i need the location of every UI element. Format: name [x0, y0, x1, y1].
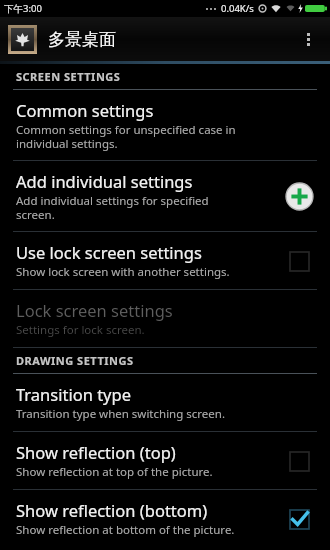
button[interactable]: Add individual settings	[0, 161, 330, 231]
staticText: Show reflection at top of the picture.	[16, 464, 213, 480]
button[interactable]: Show reflection (top)	[0, 432, 330, 489]
button[interactable]: Show reflection (bottom)	[0, 490, 330, 547]
staticText: Show reflection at bottom of the picture…	[16, 522, 235, 538]
button[interactable]: Common settings	[0, 90, 330, 160]
staticText: Show reflection (bottom)	[16, 499, 208, 521]
staticText: Transition type	[16, 383, 131, 405]
staticText: 0.04K/s	[221, 2, 254, 15]
staticText: Use lock screen settings	[16, 241, 202, 263]
staticText: Settings for lock screen.	[16, 322, 145, 338]
staticText: Add individual settings for specified sc…	[16, 193, 209, 222]
staticText: Common settings for unspecified case in …	[16, 122, 236, 151]
button[interactable]: Transition type	[0, 374, 330, 431]
staticText: 多景桌面	[48, 29, 116, 50]
button[interactable]: More options	[291, 22, 325, 56]
staticText: Common settings	[16, 99, 154, 121]
staticText: Transition type when switching screen.	[16, 406, 225, 422]
button[interactable]: Unchecked	[282, 244, 316, 278]
button[interactable]: Checked	[282, 502, 316, 536]
staticText: Show reflection (top)	[16, 441, 176, 463]
button: Lock screen settings	[0, 290, 330, 347]
staticText: Show lock screen with another settings.	[16, 264, 230, 280]
button[interactable]: Use lock screen settings	[0, 232, 330, 289]
staticText: DRAWING SETTINGS	[16, 353, 134, 368]
staticText: SCREEN SETTINGS	[16, 69, 121, 84]
staticText: 下午3:00	[4, 2, 42, 15]
staticText: Lock screen settings	[16, 299, 173, 321]
button[interactable]: Unchecked	[282, 444, 316, 478]
staticText: Add individual settings	[16, 170, 193, 192]
button[interactable]: Add individual settings	[282, 179, 316, 213]
